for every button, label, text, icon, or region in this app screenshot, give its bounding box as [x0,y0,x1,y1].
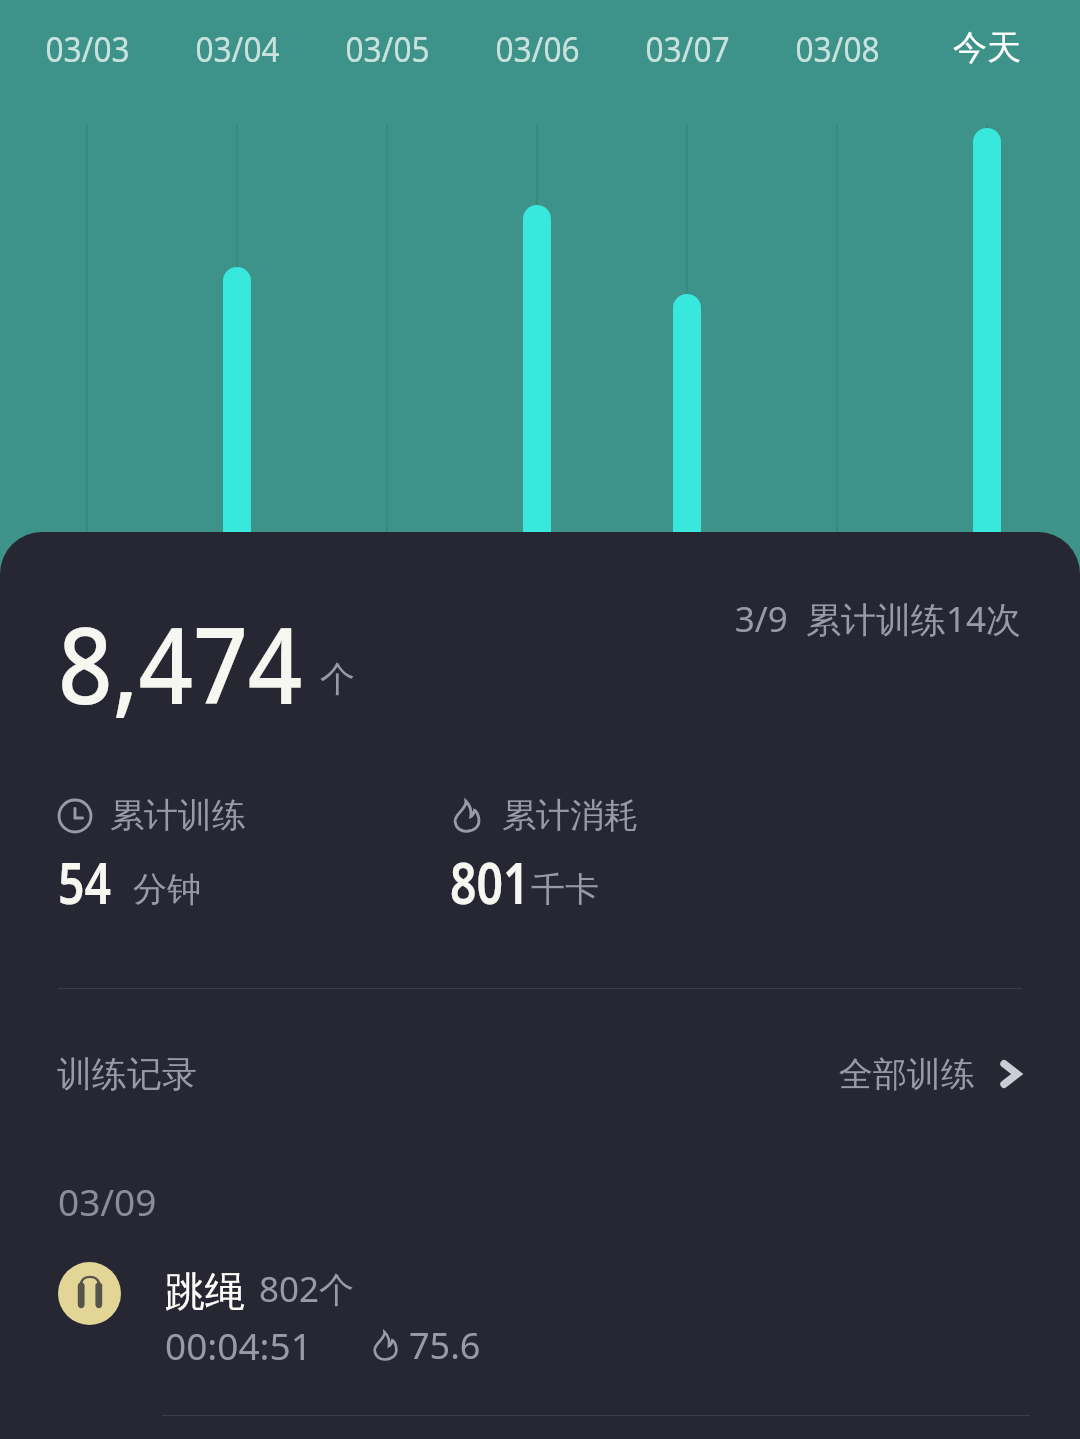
staticText: 累计训练 [110,794,246,837]
staticText: 累计消耗 [502,794,638,837]
staticText: 分钟 [133,868,201,911]
staticText: 03/07 [645,26,730,72]
staticText: 03/04 [195,26,280,72]
button[interactable]: 03/03 [12,0,162,532]
staticText: 03/03 [45,26,130,72]
button[interactable]: 03/08 [762,0,912,532]
button[interactable]: 03/06 [462,0,612,532]
staticText: 跳绳 [165,1266,245,1316]
staticText: 个 [320,657,355,701]
staticText: 03/09 [58,1176,157,1226]
button[interactable]: 训练记录 [0,1031,1080,1117]
button[interactable]: 今天 [912,0,1062,532]
staticText: 54 [58,842,112,921]
button[interactable]: 03/04 [162,0,312,532]
staticText: 801 [450,842,530,921]
staticText: 75.6 [409,1321,481,1370]
button[interactable]: 03/05 [312,0,462,532]
staticText: 03/05 [345,26,430,72]
staticText: 03/08 [795,26,880,72]
staticText: 千卡 [531,868,599,911]
other: Jump rope [70,1274,110,1314]
staticText: 训练记录 [57,1052,197,1096]
button[interactable]: 03/07 [612,0,762,532]
button[interactable]: Jump rope [0,1247,1080,1370]
staticText: 00:04:51 [165,1320,312,1370]
staticText: 802个 [259,1265,355,1313]
other: All workouts [995,1059,1025,1089]
staticText: 今天 [953,26,1021,69]
staticText: 03/06 [495,26,580,72]
staticText: 3/9 累计训练14次 [0,595,1021,643]
staticText: 8,474 [58,591,303,735]
staticText: 全部训练 [839,1053,975,1096]
